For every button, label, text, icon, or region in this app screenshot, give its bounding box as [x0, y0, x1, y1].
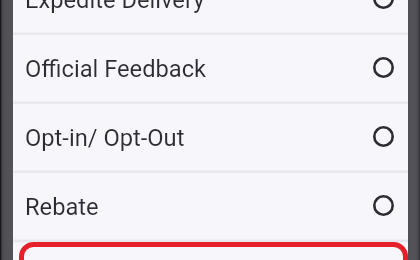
button[interactable]: Official Feedback — [13, 35, 408, 104]
staticText: Opt-in/ Opt-Out — [25, 124, 185, 152]
button[interactable]: Selected option — [19, 242, 408, 260]
other: Select Official Feedback — [373, 57, 394, 78]
staticText: Official Feedback — [25, 55, 207, 83]
button[interactable]: Opt-in/ Opt-Out — [13, 104, 408, 173]
other: Select Rebate — [373, 195, 394, 216]
button[interactable]: Rebate — [13, 173, 408, 242]
other: Select Expedite Delivery — [373, 0, 394, 9]
staticText: Rebate — [25, 193, 99, 221]
button[interactable]: Expedite Delivery — [13, 0, 408, 35]
other: Select Opt-in/ Opt-Out — [373, 126, 394, 147]
staticText: Expedite Delivery — [25, 0, 205, 14]
